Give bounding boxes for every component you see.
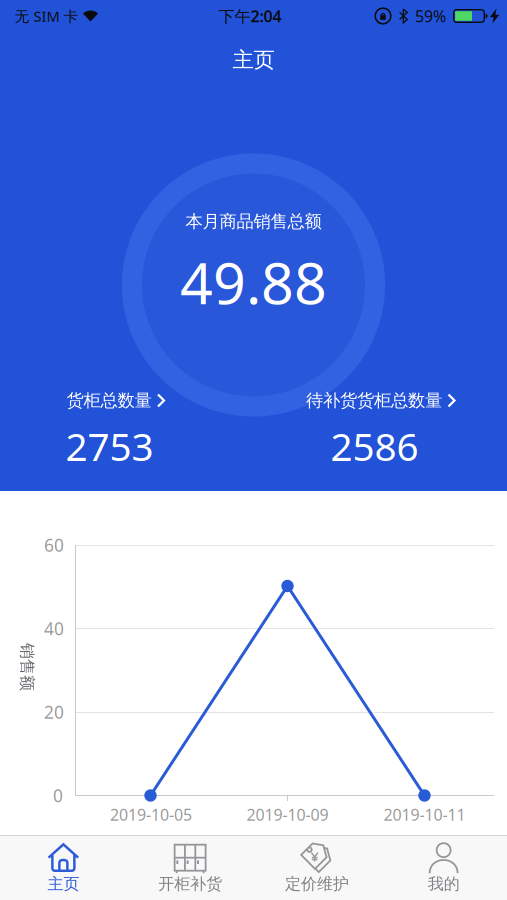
staticText: 40 — [44, 617, 64, 640]
staticText: 待补货货柜总数量 — [306, 390, 442, 411]
staticText: 我的 — [428, 874, 460, 894]
staticText: 下午2:04 — [218, 5, 281, 27]
staticText: 2753 — [65, 420, 153, 472]
button[interactable]: 待补货货柜总数量 — [254, 383, 494, 463]
staticText: 本月商品销售总额 — [185, 211, 321, 232]
staticText: 20 — [44, 700, 64, 723]
staticText: 2019-10-09 — [246, 804, 328, 825]
button[interactable]: 货柜总数量 — [0, 383, 229, 463]
staticText: 49.88 — [180, 244, 327, 320]
staticText: 开柜补货 — [158, 874, 222, 894]
staticText: 货柜总数量 — [66, 390, 151, 411]
staticText: 主页 — [47, 874, 79, 894]
staticText: 销售额 — [3, 657, 51, 677]
button[interactable]: 开柜补货 — [127, 837, 254, 899]
staticText: 2019-10-05 — [110, 804, 192, 825]
staticText: 59% — [415, 5, 446, 27]
staticText: 60 — [44, 533, 64, 556]
button[interactable]: 定价维护 — [253, 837, 380, 899]
button[interactable]: 主页 — [0, 837, 127, 899]
staticText: 2019-10-11 — [383, 804, 465, 825]
staticText: 无 SIM 卡 — [14, 6, 78, 26]
staticText: 0 — [53, 784, 63, 807]
staticText: 定价维护 — [285, 874, 349, 894]
staticText: 2586 — [330, 420, 418, 472]
button[interactable]: 我的 — [380, 837, 507, 899]
staticText: 主页 — [232, 47, 274, 73]
